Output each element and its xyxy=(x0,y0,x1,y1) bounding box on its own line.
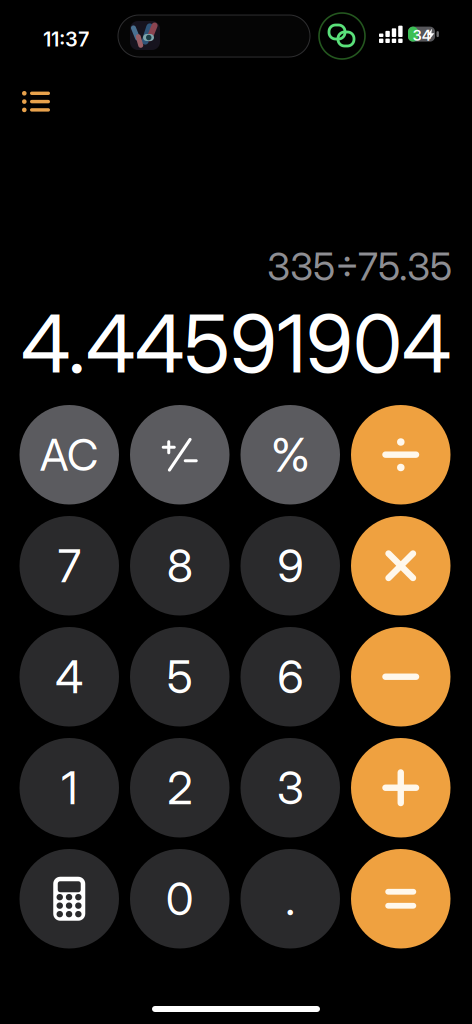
button[interactable]: 9 xyxy=(240,516,340,615)
button[interactable]: 0 xyxy=(130,849,229,948)
button[interactable]: Plus xyxy=(351,738,450,837)
staticText: 4 xyxy=(55,649,83,704)
button[interactable]: 3 xyxy=(240,738,340,837)
button[interactable]: . xyxy=(240,849,340,948)
staticText: 6 xyxy=(277,649,303,704)
button[interactable]: 1 xyxy=(19,738,119,837)
button[interactable]: 4 xyxy=(19,627,119,726)
button[interactable]: Divide xyxy=(351,405,450,504)
staticText: 3 xyxy=(277,760,304,815)
staticText: 1 xyxy=(61,760,77,815)
button[interactable]: % xyxy=(240,405,340,504)
button[interactable]: 2 xyxy=(130,738,229,837)
button[interactable]: History xyxy=(10,76,56,120)
button[interactable]: Multiply xyxy=(351,516,450,615)
staticText: . xyxy=(285,871,295,926)
staticText: 4.44591904 xyxy=(21,295,451,392)
button[interactable]: 6 xyxy=(240,627,340,726)
staticText: 11:37 xyxy=(43,27,89,51)
staticText: % xyxy=(271,426,310,483)
staticText: 5 xyxy=(167,649,193,704)
staticText: 8 xyxy=(167,538,193,593)
button[interactable]: AC xyxy=(19,405,119,504)
staticText: 335÷75.35 xyxy=(267,243,452,290)
staticText: 2 xyxy=(167,760,192,815)
button[interactable]: Plus Minus xyxy=(130,405,229,504)
button[interactable]: 7 xyxy=(19,516,119,615)
staticText: 9 xyxy=(277,538,303,593)
staticText: 7 xyxy=(58,538,81,593)
button[interactable]: Minus xyxy=(351,627,450,726)
button[interactable]: Equals xyxy=(351,849,450,948)
staticText: 0 xyxy=(166,871,194,926)
staticText: AC xyxy=(40,428,99,481)
button[interactable]: 8 xyxy=(130,516,229,615)
staticText: 34 xyxy=(412,27,431,44)
button[interactable]: 5 xyxy=(130,627,229,726)
button[interactable]: Calculator xyxy=(19,849,119,948)
